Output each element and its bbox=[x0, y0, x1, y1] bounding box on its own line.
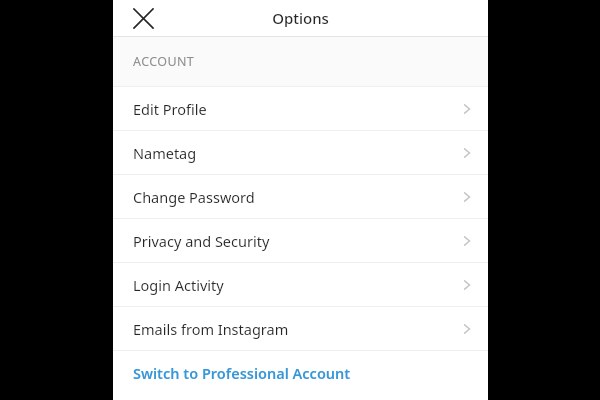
staticText: Switch to Professional Account bbox=[133, 363, 351, 383]
staticText: Emails from Instagram bbox=[133, 319, 289, 339]
button[interactable]: Nametag bbox=[113, 131, 488, 174]
button[interactable]: Privacy and Security bbox=[113, 219, 488, 262]
staticText: Options bbox=[272, 8, 329, 28]
button[interactable]: Emails from Instagram bbox=[113, 307, 488, 350]
staticText: Edit Profile bbox=[133, 99, 207, 119]
button[interactable]: Switch to Professional Account bbox=[113, 351, 488, 394]
button[interactable]: Edit Profile bbox=[113, 87, 488, 130]
staticText: Privacy and Security bbox=[133, 231, 270, 251]
button[interactable]: Login Activity bbox=[113, 263, 488, 306]
button[interactable]: Close bbox=[123, 0, 163, 36]
staticText: ACCOUNT bbox=[133, 53, 195, 70]
staticText: Login Activity bbox=[133, 275, 224, 295]
staticText: Change Password bbox=[133, 187, 255, 207]
staticText: Nametag bbox=[133, 143, 197, 163]
button[interactable]: Change Password bbox=[113, 175, 488, 218]
